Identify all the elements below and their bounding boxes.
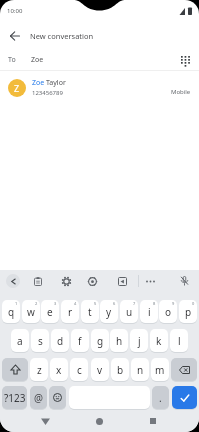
staticText: Zoe xyxy=(31,55,44,65)
button[interactable]: i xyxy=(140,300,158,323)
staticText: 7 xyxy=(133,301,136,306)
button[interactable]: c xyxy=(70,358,88,381)
button[interactable] xyxy=(91,413,107,429)
button[interactable]: s xyxy=(31,329,49,352)
button[interactable] xyxy=(2,358,28,381)
staticText: 3 xyxy=(54,301,57,306)
staticText: a xyxy=(17,334,23,348)
staticText: f xyxy=(78,334,82,348)
staticText: u xyxy=(126,305,133,319)
button[interactable]: d xyxy=(51,329,69,352)
button[interactable] xyxy=(143,274,157,288)
button[interactable]: ?123 xyxy=(2,386,27,409)
staticText: s xyxy=(38,334,43,348)
staticText: q xyxy=(8,305,15,319)
staticText: n xyxy=(137,363,144,377)
button[interactable]: t xyxy=(81,300,99,323)
staticText: p xyxy=(185,305,192,319)
staticText: w xyxy=(27,305,35,319)
button[interactable] xyxy=(180,56,191,66)
button[interactable]: l xyxy=(170,329,188,352)
button[interactable]: q xyxy=(2,300,20,323)
button[interactable]: h xyxy=(110,329,128,352)
button[interactable]: . xyxy=(152,386,169,409)
button[interactable] xyxy=(171,358,197,381)
button[interactable]: y xyxy=(100,300,118,323)
staticText: l xyxy=(178,334,181,348)
button[interactable]: k xyxy=(150,329,168,352)
button[interactable] xyxy=(49,386,66,409)
staticText: 8 xyxy=(153,301,156,306)
button[interactable]: v xyxy=(91,358,109,381)
staticText: c xyxy=(77,363,82,377)
button[interactable]: o xyxy=(159,300,177,323)
staticText: 10:00 xyxy=(7,7,23,15)
staticText: 123456789 xyxy=(32,89,63,97)
button[interactable]: x xyxy=(50,358,68,381)
button[interactable]: g xyxy=(91,329,109,352)
staticText: 6 xyxy=(113,301,116,306)
staticText: e xyxy=(47,305,53,319)
button[interactable] xyxy=(115,274,129,288)
staticText: 4 xyxy=(74,301,77,306)
staticText: k xyxy=(156,334,162,348)
staticText: h xyxy=(116,334,123,348)
button[interactable] xyxy=(0,22,30,50)
staticText: Z xyxy=(14,82,20,94)
button[interactable]: p xyxy=(179,300,197,323)
staticText: z xyxy=(37,363,42,377)
staticText: 0 xyxy=(192,301,195,306)
staticText: o xyxy=(165,305,172,319)
button[interactable]: a xyxy=(11,329,29,352)
button[interactable]: b xyxy=(111,358,129,381)
staticText: To xyxy=(8,55,16,65)
button[interactable] xyxy=(177,274,191,288)
button[interactable]: f xyxy=(71,329,89,352)
staticText: r xyxy=(68,305,73,319)
staticText: ?123 xyxy=(4,391,26,405)
button[interactable] xyxy=(59,274,73,288)
button[interactable] xyxy=(37,413,53,429)
button[interactable]: m xyxy=(151,358,169,381)
button[interactable] xyxy=(145,413,161,429)
button[interactable]: z xyxy=(30,358,48,381)
staticText: t xyxy=(88,305,92,319)
staticText: y xyxy=(106,305,112,319)
button[interactable]: Z xyxy=(8,71,191,104)
staticText: b xyxy=(117,363,124,377)
staticText: Mobile xyxy=(171,88,191,96)
staticText: 9 xyxy=(172,301,175,306)
button[interactable]: e xyxy=(41,300,59,323)
button[interactable]: w xyxy=(22,300,40,323)
button[interactable]: j xyxy=(130,329,148,352)
button[interactable]: n xyxy=(131,358,149,381)
staticText: x xyxy=(56,363,62,377)
staticText: @ xyxy=(34,391,43,405)
staticText: 5 xyxy=(94,301,97,306)
staticText: j xyxy=(138,334,141,348)
button[interactable]: u xyxy=(120,300,138,323)
staticText: 1 xyxy=(15,301,18,306)
staticText: 2 xyxy=(35,301,38,306)
button[interactable]: @ xyxy=(30,386,47,409)
button[interactable]: To xyxy=(8,50,191,70)
button[interactable] xyxy=(85,274,99,288)
button[interactable]: r xyxy=(61,300,79,323)
staticText: v xyxy=(97,363,103,377)
staticText: g xyxy=(97,334,104,348)
staticText: d xyxy=(57,334,64,348)
button[interactable] xyxy=(172,386,197,409)
staticText: i xyxy=(148,305,151,319)
staticText: New conversation xyxy=(30,31,94,41)
button[interactable] xyxy=(31,274,45,288)
staticText: Zoe Taylor xyxy=(32,78,66,88)
button[interactable] xyxy=(6,274,20,288)
staticText: . xyxy=(159,391,162,405)
staticText: m xyxy=(155,363,165,377)
